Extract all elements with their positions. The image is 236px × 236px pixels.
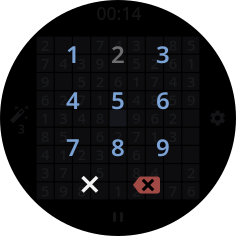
staticText: 2 [169,108,177,128]
staticText: 5 [96,163,104,182]
staticText: 4 [41,145,49,164]
staticText: 6 [156,84,170,116]
staticText: 8 [169,35,177,55]
staticText: 9 [59,181,67,201]
staticText: 7 [59,163,67,182]
button[interactable]: Pause [103,205,133,229]
button[interactable]: 2 [96,32,140,76]
staticText: 8 [96,108,104,128]
staticText: 6 [96,126,104,146]
staticText: 2 [96,72,104,91]
button[interactable]: 6 [141,78,185,122]
staticText: 7 [132,126,140,146]
staticText: 7 [150,72,158,91]
staticText: 4 [169,72,177,91]
staticText: 9 [41,72,49,91]
staticText: 8 [150,90,158,109]
staticText: 1 [114,181,122,201]
button[interactable]: 9 [141,125,185,169]
staticText: 2 [41,35,49,55]
staticText: 6 [132,145,140,164]
staticText: 6 [187,181,195,201]
staticText: 3 [59,108,67,128]
staticText: 3 [18,121,25,137]
staticText: 2 [78,145,86,164]
staticText: 2 [114,126,122,146]
staticText: 7 [169,181,177,201]
staticText: 4 [78,108,86,128]
staticText: 7 [78,90,86,109]
staticText: 5 [111,84,125,116]
button[interactable]: 1 [51,32,95,76]
staticText: 2 [132,181,140,201]
staticText: 5 [132,54,140,73]
button[interactable]: Hint [3,99,37,137]
staticText: 6 [114,72,122,91]
staticText: 2 [111,38,125,70]
staticText: 5 [41,181,49,201]
staticText: 4 [132,90,140,109]
staticText: 6 [41,90,49,109]
staticText: 5 [59,126,67,146]
staticText: 8 [111,131,125,163]
staticText: 9 [156,131,170,163]
staticText: 1 [132,72,140,91]
staticText: 6 [150,108,158,128]
button[interactable]: 7 [51,125,95,169]
staticText: 4 [59,54,67,73]
button[interactable]: 3 [141,32,185,76]
button[interactable]: Settings [210,110,226,126]
staticText: 2 [187,163,195,182]
staticText: 1 [96,90,104,109]
staticText: 4 [114,35,122,55]
staticText: 8 [78,181,86,201]
staticText: 7 [41,54,49,73]
button[interactable]: Clear [73,169,107,199]
staticText: 1 [187,54,195,73]
staticText: 7 [66,131,80,163]
staticText: 3 [156,38,170,70]
staticText: 7 [96,35,104,55]
staticText: 4 [150,163,158,182]
staticText: 5 [78,72,86,91]
staticText: 00:14 [96,2,141,25]
staticText: 3 [169,126,177,146]
staticText: 1 [59,145,67,164]
staticText: 2 [150,54,158,73]
staticText: 9 [187,90,195,109]
staticText: 9 [132,108,140,128]
button[interactable]: 5 [96,78,140,122]
staticText: 1 [150,126,158,146]
staticText: 1 [41,108,49,128]
staticText: 3 [132,35,140,55]
staticText: 9 [96,54,104,73]
staticText: 6 [169,54,177,73]
staticText: 8 [41,126,49,146]
staticText: 8 [132,163,140,182]
staticText: 4 [66,84,80,116]
staticText: 3 [96,145,104,164]
button[interactable]: Delete [130,173,162,197]
staticText: 3 [78,54,86,73]
staticText: 5 [187,35,195,55]
staticText: 3 [41,163,49,182]
button[interactable]: 8 [96,125,140,169]
button[interactable]: 4 [51,78,95,122]
staticText: 1 [66,38,80,70]
staticText: 2 [59,90,67,109]
staticText: 3 [187,72,195,91]
staticText: 5 [169,90,177,109]
